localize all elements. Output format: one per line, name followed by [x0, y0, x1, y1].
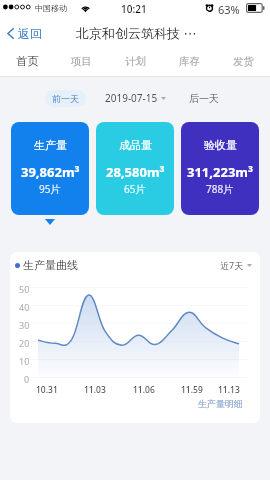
- staticText: 0: [24, 373, 30, 385]
- staticText: 28,580m³: [106, 163, 165, 181]
- staticText: 生产量曲线: [23, 258, 78, 272]
- staticText: 生产量: [34, 138, 67, 152]
- button[interactable]: 库存: [162, 46, 216, 76]
- button[interactable]: 返回: [6, 23, 43, 44]
- staticText: 库存: [179, 55, 200, 68]
- staticText: 10:21: [121, 2, 147, 16]
- button[interactable]: 验收量: [181, 122, 259, 215]
- staticText: 中国移动: [35, 3, 67, 13]
- staticText: 11.06: [133, 384, 155, 396]
- staticText: 2019-07-15: [105, 91, 158, 105]
- staticText: 成品量: [119, 138, 152, 152]
- staticText: 北京和创云筑科技 ⋯: [76, 24, 197, 42]
- button[interactable]: 成品量: [96, 122, 174, 215]
- staticText: 40: [19, 301, 30, 313]
- staticText: 10.31: [36, 384, 58, 396]
- staticText: 10: [19, 355, 30, 367]
- staticText: 项目: [71, 55, 92, 68]
- staticText: 11.59: [181, 384, 203, 396]
- button[interactable]: 近7天: [220, 259, 252, 271]
- staticText: 验收量: [204, 138, 237, 152]
- staticText: 65片: [124, 182, 146, 196]
- staticText: 50: [19, 283, 30, 295]
- staticText: 20: [19, 337, 30, 349]
- button[interactable]: 前一天: [45, 90, 86, 107]
- staticText: 后一天: [189, 92, 219, 105]
- staticText: 788片: [206, 182, 234, 196]
- button[interactable]: 生产量明细: [196, 396, 245, 411]
- button[interactable]: 项目: [54, 46, 108, 76]
- staticText: 近7天: [220, 259, 244, 271]
- staticText: 生产量明细: [198, 398, 243, 409]
- button[interactable]: 首页: [0, 46, 54, 76]
- staticText: 11.03: [84, 384, 106, 396]
- button[interactable]: 2019-07-15: [105, 91, 166, 105]
- staticText: 前一天: [52, 93, 79, 104]
- staticText: 首页: [16, 54, 39, 68]
- staticText: 30: [19, 319, 30, 331]
- button[interactable]: 生产量: [11, 122, 89, 215]
- staticText: 11.13: [218, 384, 240, 396]
- button[interactable]: 计划: [108, 46, 162, 76]
- button[interactable]: 发货: [216, 46, 270, 76]
- staticText: 95片: [39, 182, 61, 196]
- button[interactable]: 后一天: [184, 89, 224, 108]
- staticText: 39,862m³: [21, 163, 80, 181]
- staticText: 311,223m³: [187, 163, 253, 181]
- staticText: 发货: [233, 55, 254, 68]
- staticText: 返回: [18, 26, 42, 41]
- staticText: 计划: [125, 55, 146, 68]
- staticText: 63%: [218, 2, 240, 17]
